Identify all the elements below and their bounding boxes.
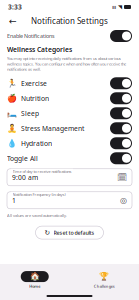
staticText: Enable Notifications <box>7 32 55 40</box>
staticText: Notification Frequency (in days) <box>12 192 65 197</box>
button[interactable]: 🧘 <box>0 121 139 136</box>
staticText: 🏠 <box>30 272 40 281</box>
staticText: Exercise <box>21 79 47 88</box>
staticText: You may opt into receiving daily notific… <box>7 56 126 72</box>
staticText: 9:00 am <box>12 173 38 182</box>
button[interactable]: 1 <box>0 192 139 209</box>
button[interactable]: 🛏️ <box>0 106 139 121</box>
staticText: Home <box>29 284 40 289</box>
staticText: All values are saved automatically. <box>7 213 67 218</box>
staticText: Challenges <box>94 284 115 289</box>
staticText: 🧘 <box>7 124 17 133</box>
staticText: 💧 <box>7 139 17 148</box>
button[interactable]: Back <box>5 13 21 29</box>
staticText: Hydration <box>21 139 52 148</box>
staticText: Reset to defaults <box>53 229 94 236</box>
staticText: ◎ <box>120 196 127 205</box>
staticText: Toggle All <box>7 154 38 163</box>
button[interactable]: 9:00 am <box>0 169 139 186</box>
staticText: Notification Settings <box>31 16 108 26</box>
staticText: ▮▮ <box>112 5 116 9</box>
button[interactable]: Toggle All <box>0 151 139 166</box>
staticText: Sleep <box>21 109 39 118</box>
button[interactable]: ↻ <box>35 226 103 239</box>
button[interactable]: Enable Notifications <box>0 28 139 44</box>
staticText: 🏃 <box>7 79 17 88</box>
button[interactable]: 🏠 <box>0 271 69 289</box>
staticText: ◥ <box>118 4 122 10</box>
button[interactable]: 💧 <box>0 136 139 151</box>
staticText: ← <box>9 16 17 26</box>
staticText: Wellness Categories <box>7 45 72 54</box>
staticText: 🏆 <box>99 272 109 281</box>
staticText: 🛏️ <box>7 109 17 118</box>
button[interactable]: 🍎 <box>0 91 139 106</box>
staticText: 🗓 <box>117 173 127 182</box>
staticText: ↻ <box>44 229 50 236</box>
staticText: Stress Management <box>21 124 84 133</box>
button[interactable]: 🏆 <box>69 271 139 289</box>
staticText: 3:33 <box>8 3 22 11</box>
button[interactable]: 🏃 <box>0 76 139 91</box>
staticText: 🍎 <box>7 94 17 103</box>
staticText: Time of day to receive notifications <box>12 169 71 174</box>
staticText: 1 <box>12 196 16 205</box>
staticText: Nutrition <box>21 94 49 103</box>
